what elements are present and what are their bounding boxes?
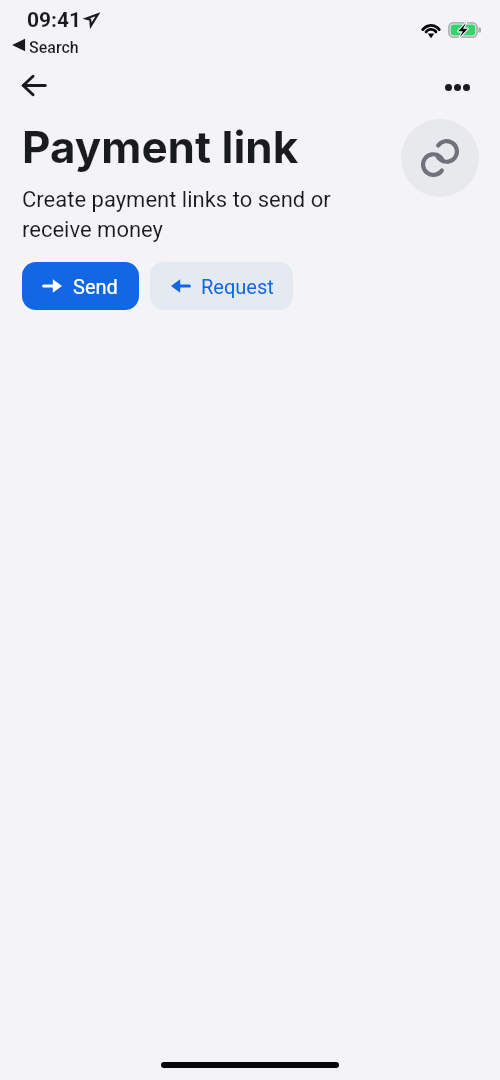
button[interactable]: Copy link: [401, 119, 479, 197]
staticText: Payment link: [22, 120, 299, 173]
staticText: Search: [29, 38, 79, 57]
staticText: Request: [201, 275, 274, 298]
button[interactable]: Back: [9, 62, 59, 108]
button[interactable]: More options: [432, 64, 482, 110]
button[interactable]: Request: [150, 262, 293, 310]
staticText: Send: [73, 275, 118, 298]
button[interactable]: Send: [22, 262, 139, 310]
staticText: 09:41: [27, 8, 82, 33]
staticText: Create payment links to send or receive …: [22, 187, 331, 243]
